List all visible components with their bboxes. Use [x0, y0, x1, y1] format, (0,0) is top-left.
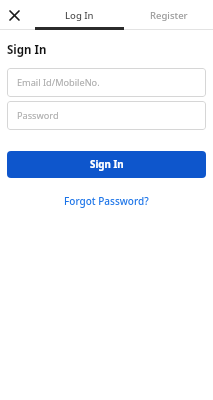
staticText: Sign In [7, 42, 47, 58]
staticText: Log In [65, 9, 94, 22]
staticText: Register [150, 9, 188, 22]
button[interactable]: Register [124, 0, 213, 30]
button[interactable] [0, 0, 35, 30]
button[interactable]: Password [7, 101, 206, 130]
button[interactable]: Email Id/MobileNo. [7, 68, 206, 97]
button[interactable]: Sign In [7, 151, 206, 178]
button[interactable]: Log In [35, 0, 124, 30]
staticText: Sign In [90, 158, 124, 171]
staticText: Email Id/MobileNo. [17, 76, 100, 89]
staticText: Password [17, 109, 59, 122]
button[interactable]: Forgot Password? [64, 194, 149, 208]
staticText: Forgot Password? [64, 194, 149, 208]
